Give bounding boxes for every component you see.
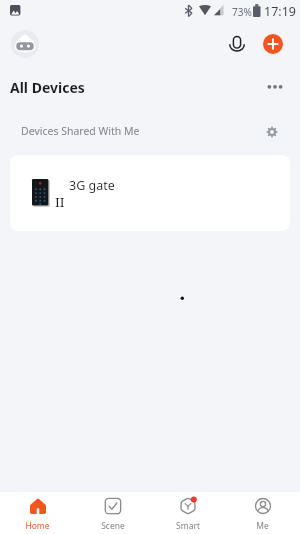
button[interactable]: Shared device settings [266, 126, 278, 138]
button[interactable]: Add device [263, 34, 283, 54]
button[interactable]: Scene [75, 492, 150, 534]
button[interactable]: Smart [150, 492, 225, 534]
staticText: Home [25, 520, 50, 532]
staticText: 73% [232, 5, 252, 19]
button[interactable]: Devices Shared With Me [0, 108, 300, 152]
button[interactable]: Voice search [226, 32, 248, 54]
button[interactable]: Profile [11, 30, 39, 58]
button[interactable]: 3G gate [10, 155, 290, 231]
staticText: 3G gate [69, 177, 115, 194]
staticText: II [55, 193, 65, 211]
staticText: All Devices [10, 78, 85, 97]
staticText: Scene [101, 520, 125, 532]
button[interactable]: Me [225, 492, 300, 534]
button[interactable]: More options [262, 74, 288, 100]
staticText: Me [256, 520, 269, 532]
staticText: Smart [176, 520, 200, 532]
button[interactable]: Home [0, 492, 75, 534]
staticText: Devices Shared With Me [21, 124, 140, 138]
staticText: 17:19 [264, 3, 296, 20]
